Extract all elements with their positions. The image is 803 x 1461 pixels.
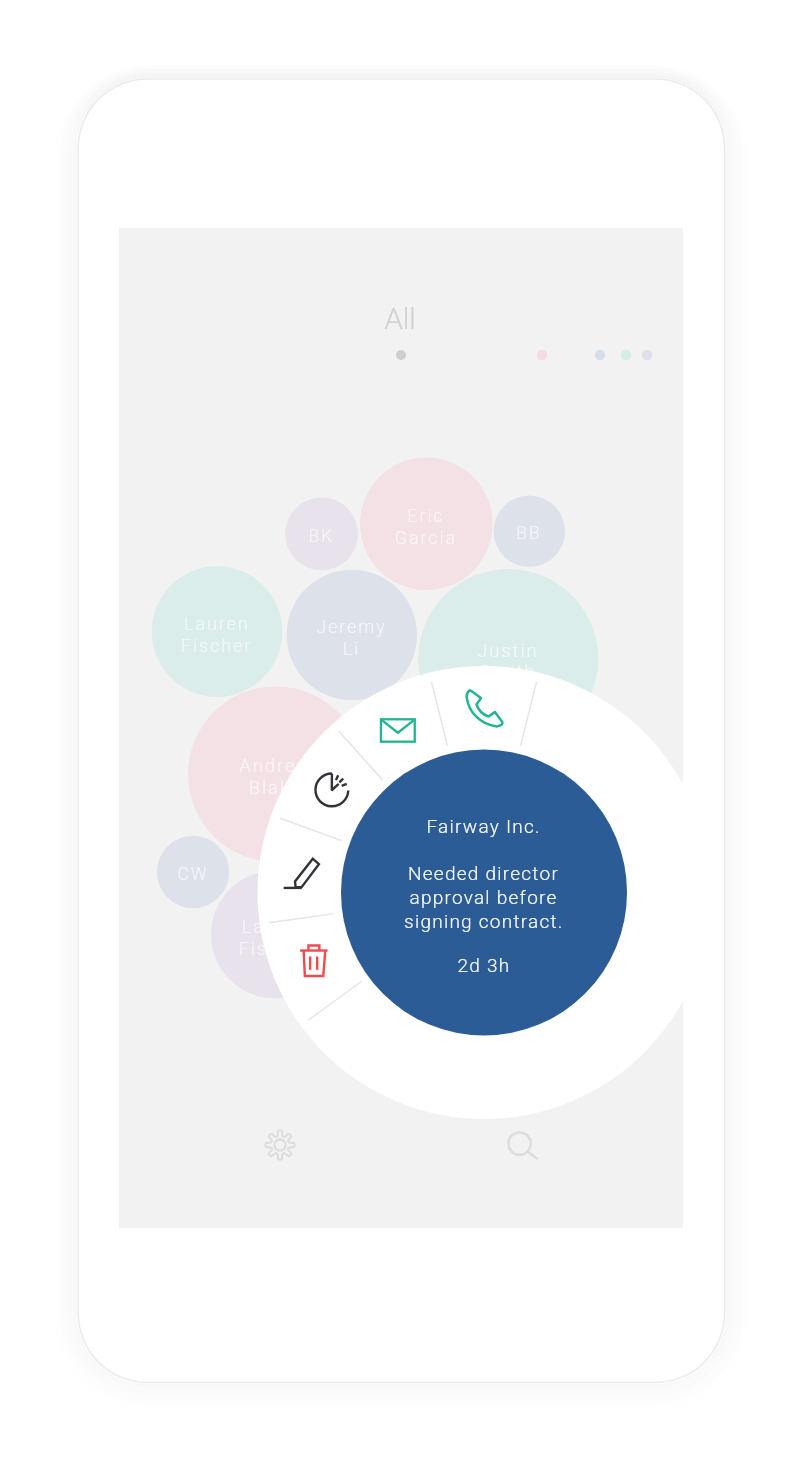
button[interactable]: Justin Smith bbox=[418, 569, 598, 749]
button[interactable]: Search bbox=[494, 1118, 546, 1170]
button[interactable]: Eric Garcia bbox=[360, 458, 493, 591]
button[interactable]: Call bbox=[452, 677, 516, 741]
button[interactable]: Edit bbox=[270, 841, 334, 905]
button[interactable]: BK bbox=[285, 498, 358, 571]
button[interactable]: Andrew Blake bbox=[188, 686, 364, 862]
button[interactable]: Lauren Fischer bbox=[152, 566, 283, 697]
button[interactable]: Jeremy Li bbox=[287, 570, 417, 700]
button[interactable]: All bbox=[368, 296, 434, 336]
button[interactable]: Lauren Fischer bbox=[211, 871, 339, 999]
button[interactable]: Snooze bbox=[300, 758, 364, 822]
button[interactable]: Delete bbox=[282, 929, 346, 993]
button[interactable]: Email bbox=[366, 698, 430, 762]
button[interactable]: BB bbox=[494, 496, 565, 567]
button[interactable]: CW bbox=[157, 836, 229, 908]
button[interactable]: Settings bbox=[254, 1119, 306, 1171]
button[interactable]: Fairway Inc. Needed director approval be… bbox=[341, 750, 627, 1036]
